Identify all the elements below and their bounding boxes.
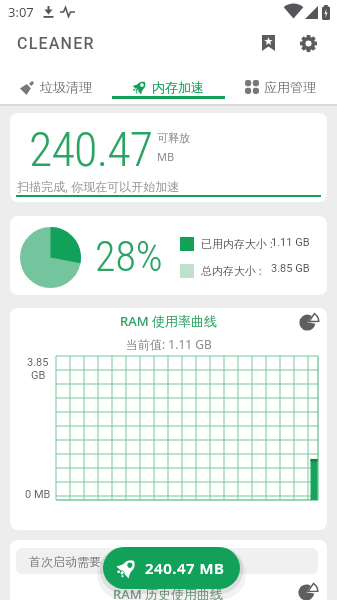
staticText: 3:07 — [8, 3, 34, 21]
button[interactable] — [299, 311, 319, 331]
button[interactable]: 应用管理 — [224, 62, 336, 104]
button[interactable] — [256, 31, 280, 55]
staticText: 3.85 — [27, 356, 49, 369]
staticText: 当前值: 1.11 GB — [126, 336, 212, 352]
staticText: 3.85 GB — [271, 262, 310, 275]
staticText: 内存加速 — [152, 79, 204, 95]
staticText: 240.47 MB — [145, 558, 225, 578]
staticText: MB — [157, 149, 175, 164]
staticText: 0 MB — [25, 488, 51, 501]
staticText: 1.11 GB — [271, 236, 310, 249]
staticText: GB — [31, 369, 46, 382]
staticText: RAM 使用率曲线 — [120, 312, 218, 330]
staticText: 扫描完成, 你现在可以开始加速 — [17, 178, 180, 194]
button[interactable]: 垃圾清理 — [0, 62, 112, 104]
button[interactable]: 内存加速 — [112, 62, 224, 104]
button[interactable] — [296, 31, 320, 55]
button[interactable] — [298, 582, 318, 600]
staticText: 应用管理 — [264, 79, 316, 95]
staticText: 28% — [95, 232, 163, 281]
staticText: RAM 历史使用曲线 — [113, 585, 224, 600]
staticText: 垃圾清理 — [40, 79, 92, 95]
button[interactable]: 240.47 MB — [103, 547, 240, 589]
staticText: 首次启动需要 — [29, 554, 101, 569]
staticText: 240.47 — [29, 121, 153, 177]
staticText: CLEANER — [17, 34, 95, 53]
staticText: 可释放 — [157, 131, 190, 145]
staticText: 总内存大小 : — [201, 263, 262, 278]
staticText: 已用内存大小 : — [201, 236, 273, 251]
